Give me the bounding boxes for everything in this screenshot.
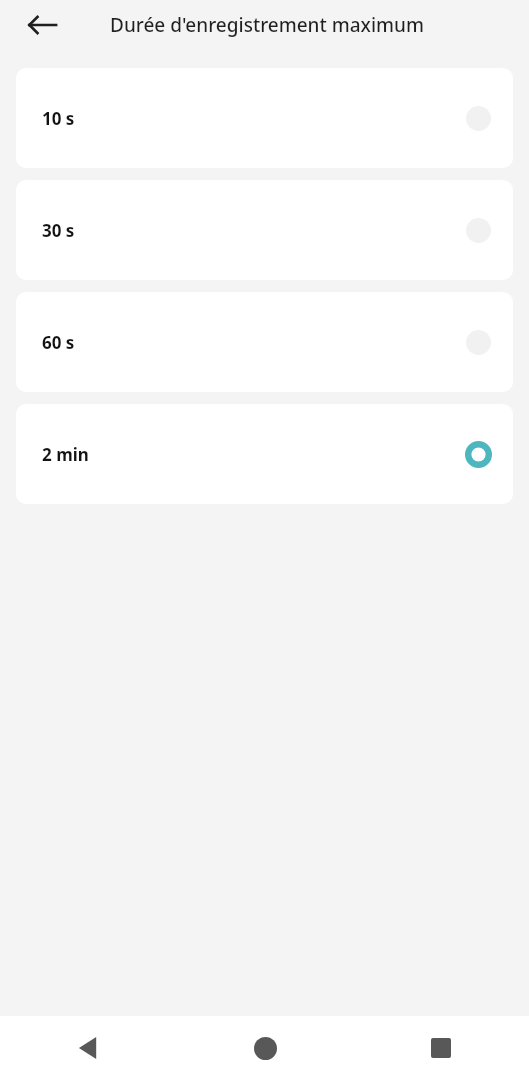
button[interactable]: 10 s (16, 68, 513, 168)
staticText: 2 min (42, 443, 89, 466)
staticText: 30 s (42, 219, 75, 242)
staticText: 60 s (42, 331, 75, 354)
button[interactable]: 2 min (16, 404, 513, 504)
button[interactable]: Applications récentes (353, 1016, 529, 1080)
button[interactable]: 60 s (16, 292, 513, 392)
button[interactable]: Accueil (177, 1016, 353, 1080)
button[interactable]: 30 s (16, 180, 513, 280)
button[interactable]: Retour (0, 1016, 177, 1080)
staticText: Durée d'enregistrement maximum (110, 12, 424, 38)
button[interactable]: Retour (22, 5, 62, 45)
staticText: 10 s (42, 107, 75, 130)
